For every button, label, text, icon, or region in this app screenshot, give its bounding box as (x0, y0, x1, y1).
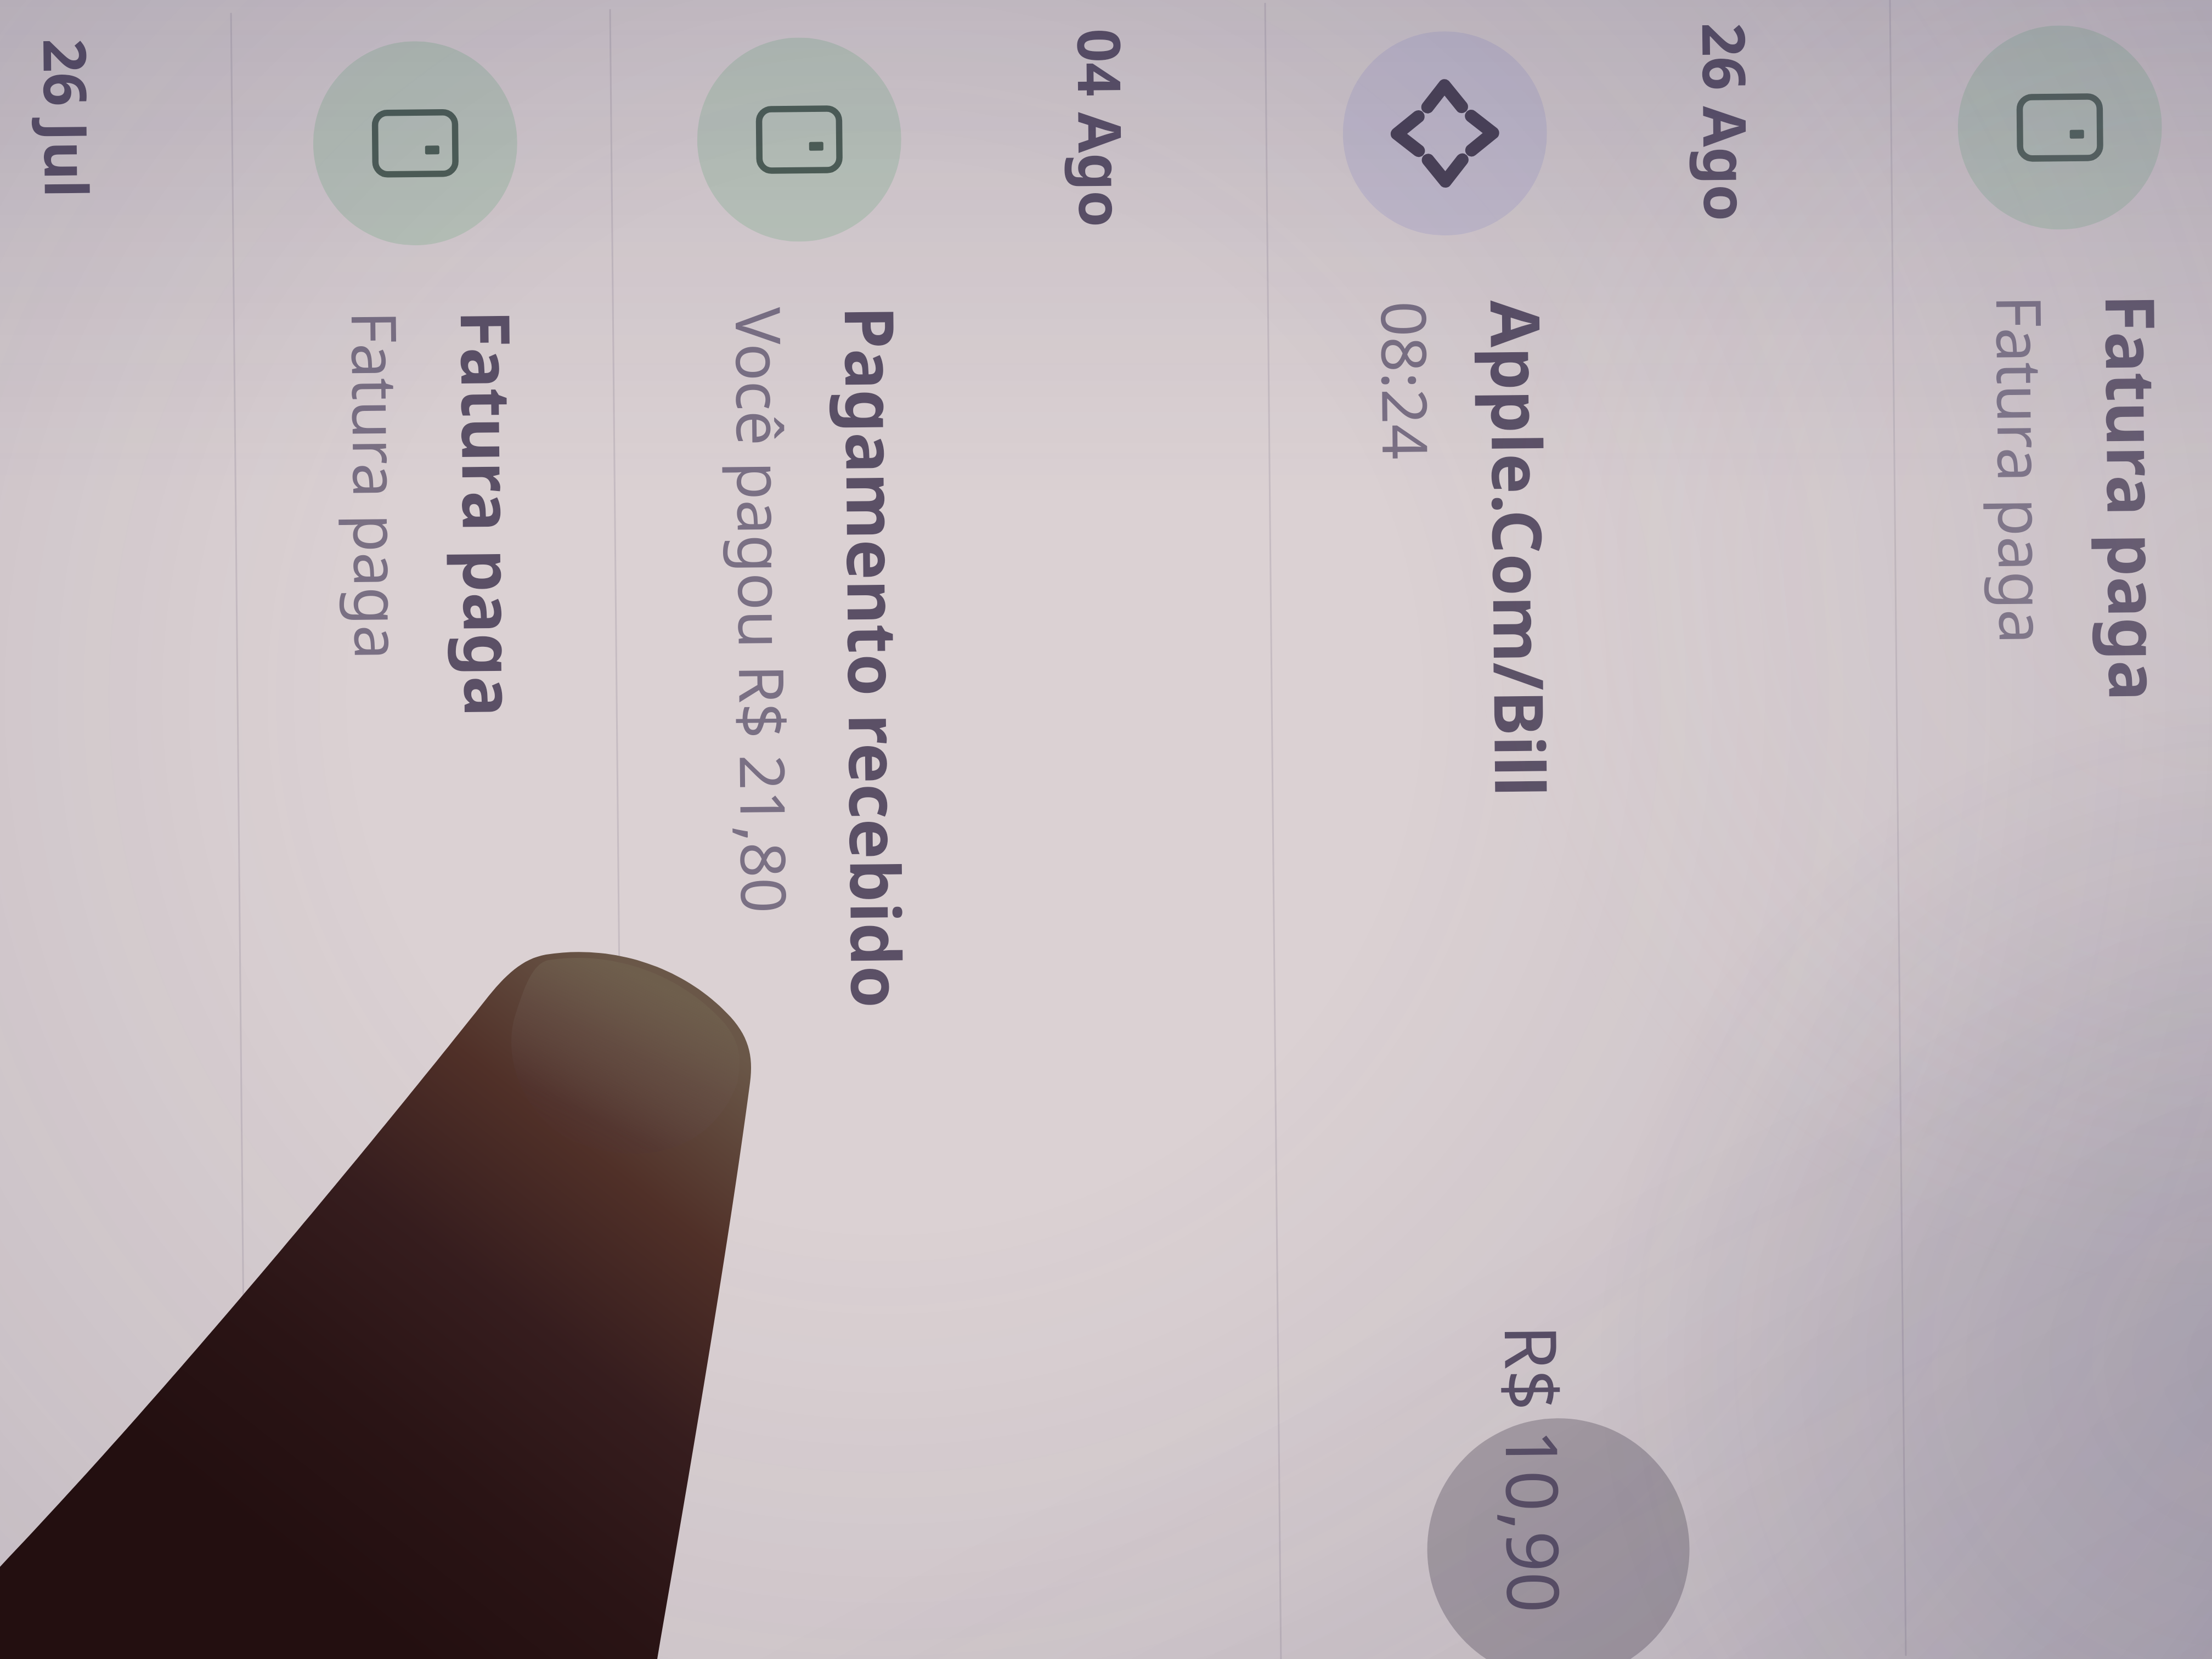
staticText: Apple.Com/Bill (1471, 300, 1568, 798)
staticText: Fatura paga (2086, 294, 2182, 702)
staticText: Você pagou R$ 21,80 (717, 307, 808, 914)
other: Fatura paga (312, 40, 518, 246)
staticText: Fatura paga (1978, 295, 2066, 645)
button[interactable]: Fatura paga (1891, 0, 2212, 1656)
other: Pix (1342, 30, 1548, 236)
staticText: 04 Ago (1060, 28, 1142, 228)
button[interactable]: Fatura paga (232, 9, 625, 1659)
staticText: 08:24 (1363, 301, 1449, 460)
button[interactable]: Pix (1266, 0, 1645, 1659)
staticText: 26 Jul (26, 38, 108, 198)
button[interactable]: Fatura paga (611, 5, 1020, 1659)
other: Fatura paga (1957, 24, 2163, 231)
staticText: 26 Ago (1685, 22, 1767, 222)
staticText: Fatura paga (333, 311, 421, 660)
staticText: R$ 10,90 (1484, 1324, 1584, 1614)
other: Fatura paga (696, 37, 902, 243)
staticText: Fatura paga (441, 309, 538, 717)
staticText: Pagamento recebido (825, 306, 924, 1009)
